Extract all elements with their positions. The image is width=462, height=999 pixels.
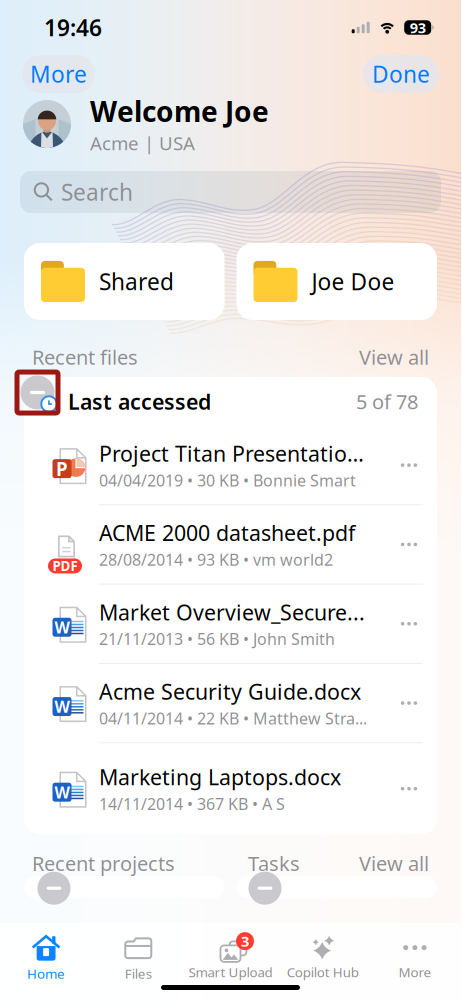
staticText: Acme | USA [90, 131, 195, 155]
staticText: Copilot Hub [287, 963, 359, 981]
staticText: Smart Upload [188, 963, 272, 981]
staticText: ACME 2000 datasheet.pdf [99, 519, 355, 547]
button[interactable]: P [24, 426, 437, 504]
staticText: W [54, 617, 69, 638]
button[interactable]: More [369, 933, 461, 983]
staticText: 5 of 78 [356, 388, 418, 415]
button[interactable]: W [24, 743, 437, 834]
staticText: Market Overview_Secure... [99, 598, 365, 626]
staticText: 93 [410, 18, 426, 37]
staticText: Marketing Laptops.docx [99, 763, 341, 791]
staticText: Joe Doe [311, 266, 394, 296]
staticText: 21/11/2013 • 56 KB • John Smith [99, 628, 335, 649]
staticText: Tasks [248, 850, 300, 876]
staticText: Files [125, 965, 152, 982]
button[interactable]: Done [363, 55, 439, 93]
staticText: W [54, 696, 69, 717]
button[interactable]: 3 [184, 933, 277, 983]
staticText: View all [359, 344, 429, 370]
staticText: Project Titan Presentation... [99, 439, 367, 468]
button[interactable]: Files [92, 933, 184, 983]
staticText: 28/08/2014 • 93 KB • vm world2 [99, 549, 333, 570]
staticText: Welcome Joe [90, 92, 269, 130]
button[interactable]: Home [0, 933, 92, 983]
staticText: 04/11/2014 • 22 KB • Matthew Stra... [99, 708, 367, 729]
button[interactable]: Joe Doe [236, 243, 437, 320]
staticText: Acme Security Guide.docx [99, 677, 361, 706]
button[interactable]: View all [359, 344, 429, 370]
staticText: W [54, 782, 69, 803]
staticText: Recent files [32, 344, 138, 370]
staticText: Search [61, 177, 133, 207]
staticText: More [398, 963, 431, 981]
button[interactable]: View all [359, 850, 429, 876]
button[interactable]: Search [20, 171, 441, 213]
staticText: Last accessed [68, 387, 211, 416]
button[interactable]: PDF [24, 505, 437, 584]
staticText: More [30, 59, 87, 89]
staticText: 04/04/2019 • 30 KB • Bonnie Smart [99, 470, 356, 491]
staticText: Done [372, 59, 430, 89]
staticText: Home [27, 965, 65, 982]
staticText: Recent projects [32, 850, 175, 876]
button[interactable]: Shared [24, 243, 224, 320]
staticText: PDF [52, 557, 77, 575]
staticText: 14/11/2014 • 367 KB • A S [99, 793, 285, 814]
staticText: P [56, 456, 68, 481]
staticText: 3 [241, 931, 249, 951]
button[interactable]: W [24, 585, 437, 663]
button[interactable]: Copilot Hub [277, 933, 369, 983]
staticText: Shared [99, 266, 174, 296]
staticText: 19:46 [44, 12, 102, 42]
button[interactable]: More [22, 55, 95, 93]
button[interactable]: W [24, 664, 437, 742]
staticText: View all [359, 850, 429, 876]
